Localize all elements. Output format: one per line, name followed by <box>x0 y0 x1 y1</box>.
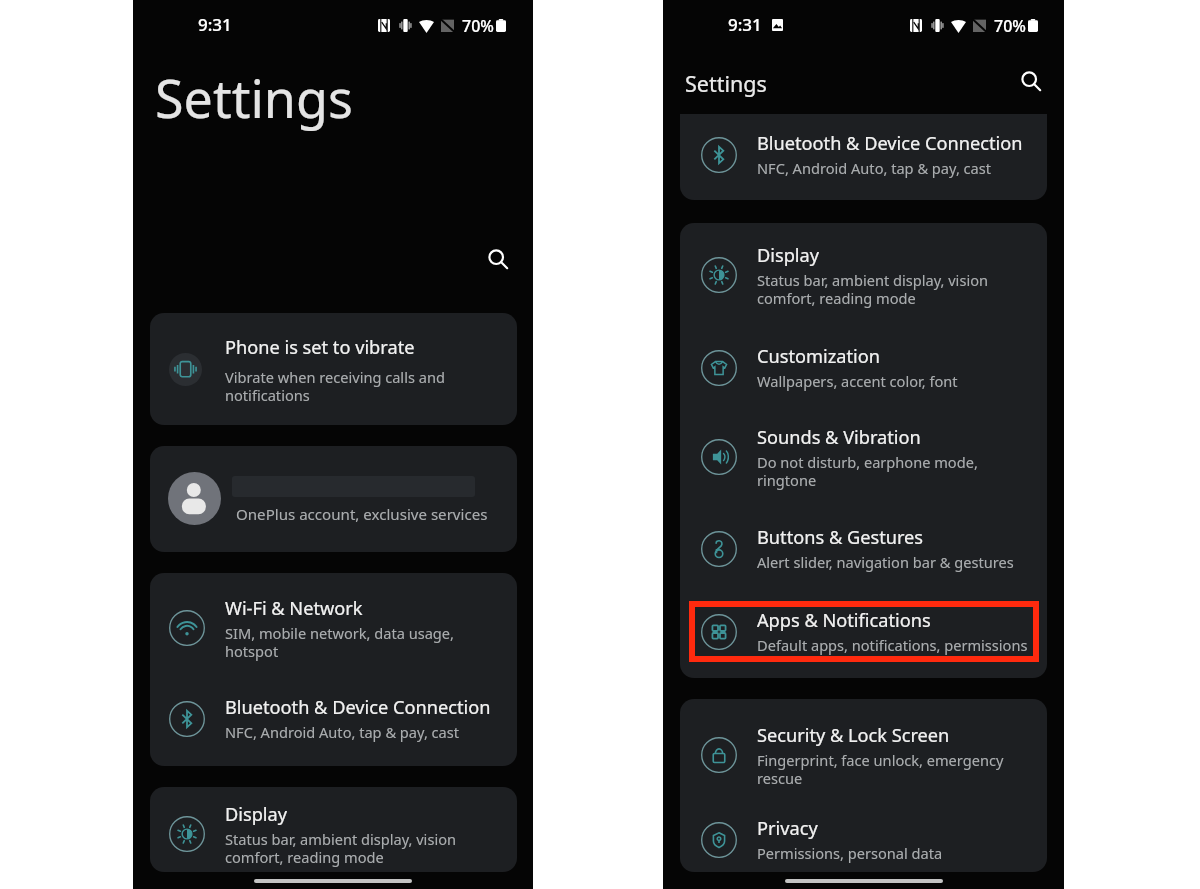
staticText: Wallpapers, accent color, font <box>757 371 958 391</box>
button[interactable]: Wi-Fi & Network <box>150 573 517 680</box>
staticText: Bluetooth & Device Connection <box>757 131 1023 156</box>
staticText: Vibrate when receiving calls and notific… <box>225 367 445 406</box>
staticText: NFC, Android Auto, tap & pay, cast <box>225 722 460 742</box>
staticText: Buttons & Gestures <box>757 525 924 550</box>
button[interactable]: Display <box>150 787 517 872</box>
button[interactable]: OnePlus account, exclusive services <box>150 446 517 552</box>
staticText: Apps & Notifications <box>757 608 931 633</box>
staticText: Sounds & Vibration <box>757 425 921 450</box>
button[interactable]: Sounds & Vibration <box>680 413 1047 511</box>
staticText: Security & Lock Screen <box>757 723 950 748</box>
staticText: Settings <box>685 69 767 98</box>
button[interactable]: Bluetooth & Device Connection <box>150 680 517 766</box>
staticText: 70% <box>994 15 1026 37</box>
staticText: Phone is set to vibrate <box>225 335 415 360</box>
button[interactable]: Bluetooth & Device Connection <box>680 114 1047 200</box>
button[interactable]: Privacy <box>680 799 1047 872</box>
staticText: Alert slider, navigation bar & gestures <box>757 552 1014 572</box>
staticText: SIM, mobile network, data usage, hotspot <box>225 623 454 662</box>
staticText: 9:31 <box>198 13 232 36</box>
staticText: Settings <box>155 62 353 133</box>
staticText: 70% <box>462 15 494 37</box>
button[interactable]: Apps & Notifications <box>680 599 1047 678</box>
button[interactable]: Security & Lock Screen <box>680 699 1047 799</box>
button[interactable]: Phone is set to vibrate <box>150 313 517 425</box>
button[interactable]: Customization <box>680 323 1047 413</box>
staticText: Do not disturb, earphone mode, ringtone <box>757 452 978 491</box>
staticText: Display <box>757 243 820 268</box>
staticText: Status bar, ambient display, vision comf… <box>757 270 988 309</box>
staticText: OnePlus account, exclusive services <box>236 504 488 525</box>
button[interactable]: Display <box>680 223 1047 323</box>
staticText: Wi-Fi & Network <box>225 596 363 621</box>
staticText: Default apps, notifications, permissions <box>757 635 1028 655</box>
staticText: Fingerprint, face unlock, emergency resc… <box>757 750 1004 789</box>
staticText: Status bar, ambient display, vision comf… <box>225 829 456 868</box>
button[interactable]: Search <box>1007 58 1051 102</box>
staticText: Privacy <box>757 816 818 841</box>
staticText: 9:31 <box>728 13 762 36</box>
staticText: Display <box>225 802 288 827</box>
staticText: Permissions, personal data <box>757 843 943 863</box>
button[interactable]: Buttons & Gestures <box>680 511 1047 599</box>
staticText: NFC, Android Auto, tap & pay, cast <box>757 158 992 178</box>
staticText: Bluetooth & Device Connection <box>225 695 491 720</box>
staticText: Customization <box>757 344 880 369</box>
button[interactable]: Search <box>475 236 519 280</box>
